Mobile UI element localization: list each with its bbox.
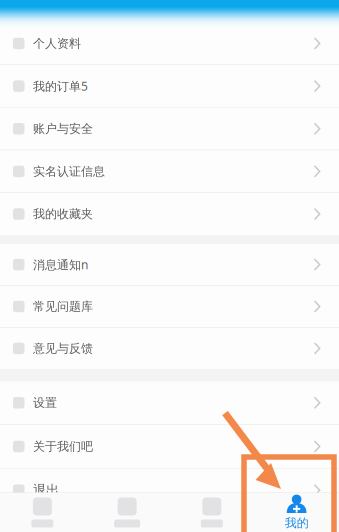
staticText: 意见与反馈 <box>33 341 93 356</box>
staticText: 我的收藏夹 <box>33 207 93 221</box>
button[interactable]: 退出 <box>0 469 339 512</box>
staticText: 我的订单5 <box>33 78 88 94</box>
button[interactable]: 服务 <box>85 493 170 532</box>
button[interactable]: 我的订单5 <box>0 65 339 107</box>
button[interactable]: 首页 <box>0 493 85 532</box>
button[interactable]: 消息通知n <box>0 244 339 285</box>
button[interactable]: 账户与安全 <box>0 108 339 150</box>
staticText: 消息通知n <box>33 257 88 272</box>
button[interactable]: 个人资料 <box>0 22 339 64</box>
staticText: 退出 <box>33 482 59 498</box>
staticText: 关于我们吧 <box>33 439 93 454</box>
button[interactable]: 意见与反馈 <box>0 328 339 369</box>
button[interactable]: 设置 <box>0 381 339 424</box>
button[interactable]: 我的 <box>254 493 339 532</box>
button[interactable]: 常见问题库 <box>0 286 339 327</box>
button[interactable]: 关于我们吧 <box>0 425 339 468</box>
button[interactable]: 消息 <box>169 493 254 532</box>
button[interactable]: 实名认证信息 <box>0 150 339 192</box>
staticText: 我的 <box>285 516 309 530</box>
staticText: 账户与安全 <box>33 121 93 136</box>
staticText: 个人资料 <box>33 36 81 51</box>
staticText: 常见问题库 <box>33 299 93 314</box>
staticText: 实名认证信息 <box>33 164 105 179</box>
button[interactable]: 我的收藏夹 <box>0 193 339 235</box>
staticText: 设置 <box>33 395 57 410</box>
